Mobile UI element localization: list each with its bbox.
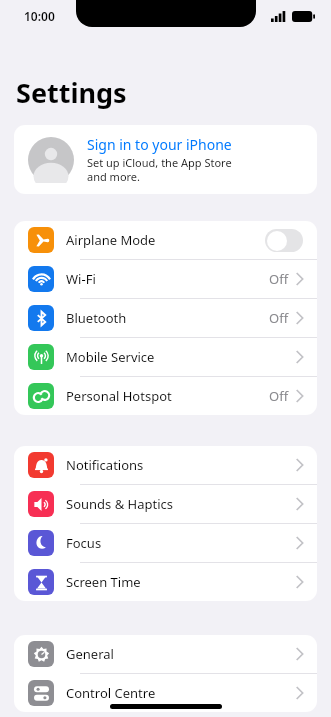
staticText: Focus bbox=[66, 534, 102, 552]
button[interactable]: Airplane Mode toggle bbox=[265, 229, 303, 252]
button[interactable]: Focus bbox=[14, 524, 317, 562]
button[interactable]: Personal Hotspot bbox=[14, 377, 317, 415]
button[interactable]: Screen Time bbox=[14, 563, 317, 601]
staticText: Set up iCloud, the App Store and more. bbox=[87, 155, 232, 184]
button[interactable]: Mobile Service bbox=[14, 338, 317, 376]
button[interactable]: Sounds & Haptics bbox=[14, 485, 317, 523]
button[interactable]: Control Centre bbox=[14, 674, 317, 712]
staticText: Settings bbox=[16, 74, 127, 111]
button[interactable]: Airplane Mode bbox=[14, 221, 317, 259]
staticText: Sounds & Haptics bbox=[66, 495, 174, 513]
button[interactable]: Notifications bbox=[14, 446, 317, 484]
staticText: Notifications bbox=[66, 456, 144, 474]
button[interactable]: Sign in to your iPhone bbox=[14, 125, 317, 194]
button[interactable]: General bbox=[14, 635, 317, 673]
staticText: General bbox=[66, 645, 114, 663]
staticText: Wi-Fi bbox=[66, 270, 96, 288]
staticText: Mobile Service bbox=[66, 348, 155, 366]
staticText: 10:00 bbox=[24, 8, 55, 24]
staticText: Airplane Mode bbox=[66, 231, 156, 249]
staticText: Control Centre bbox=[66, 684, 156, 702]
staticText: Off bbox=[269, 387, 289, 405]
staticText: Sign in to your iPhone bbox=[87, 135, 232, 154]
staticText: Personal Hotspot bbox=[66, 387, 172, 405]
staticText: Bluetooth bbox=[66, 309, 127, 327]
staticText: Screen Time bbox=[66, 573, 141, 591]
staticText: Off bbox=[269, 309, 289, 327]
staticText: Off bbox=[269, 270, 289, 288]
button[interactable]: Wi-Fi bbox=[14, 260, 317, 298]
button[interactable]: Bluetooth bbox=[14, 299, 317, 337]
